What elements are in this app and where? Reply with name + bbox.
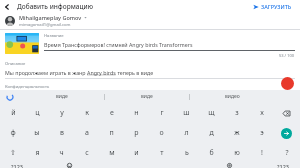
button[interactable]: ч — [49, 143, 74, 163]
button[interactable]: я — [25, 143, 49, 163]
staticText: м — [109, 148, 115, 158]
button[interactable]: ! — [249, 143, 274, 163]
button[interactable]: ж — [224, 123, 249, 143]
staticText: Конфиденциальность — [5, 84, 50, 90]
button[interactable]: Back — [0, 0, 13, 13]
button[interactable]: видео — [190, 90, 274, 103]
staticText: mimagomail1@gmail.com — [19, 22, 71, 28]
staticText: Мы продолжаем играть в жанр — [5, 69, 87, 76]
button[interactable]: Google — [0, 90, 20, 103]
button[interactable]: п — [99, 123, 124, 143]
button[interactable]: х — [249, 103, 274, 123]
staticText: и — [134, 148, 139, 158]
staticText: Добавить информацию — [17, 2, 94, 11]
staticText: т — [160, 148, 164, 158]
button[interactable]: Enter — [281, 128, 292, 139]
button[interactable]: у — [49, 103, 74, 123]
staticText: виде — [56, 93, 68, 100]
staticText: ЗАГРУЗИТЬ — [261, 3, 292, 10]
staticText: видео — [225, 93, 240, 100]
button[interactable]: а — [74, 123, 99, 143]
button[interactable]: б — [199, 143, 224, 163]
staticText: л — [184, 128, 189, 138]
staticText: а — [85, 128, 89, 138]
button[interactable]: Settings — [217, 163, 242, 168]
staticText: ⇧ — [10, 149, 16, 157]
staticText: я — [35, 148, 40, 158]
staticText: ф — [10, 128, 16, 138]
button[interactable]: Конфиденциальность — [5, 84, 295, 90]
staticText: р — [134, 128, 139, 138]
button[interactable]: ?123 — [1, 163, 32, 168]
staticText: Описание — [5, 61, 26, 67]
staticText: е — [110, 108, 114, 118]
staticText: виде — [141, 93, 153, 100]
staticText: ы — [34, 128, 40, 138]
button[interactable]: Backspace — [274, 103, 299, 123]
staticText: г — [160, 108, 164, 118]
staticText: ? — [285, 148, 289, 158]
staticText: ь — [185, 148, 189, 158]
staticText: Название — [44, 33, 64, 39]
button[interactable]: м — [99, 143, 124, 163]
staticText: Mihailgameplay Gomov — [19, 14, 82, 21]
button[interactable]: т — [149, 143, 174, 163]
button[interactable]: виде — [20, 90, 104, 103]
staticText: ю — [234, 148, 240, 158]
button[interactable]: о — [149, 123, 174, 143]
button[interactable]: з — [224, 103, 249, 123]
staticText: ч — [59, 148, 64, 158]
button[interactable]: с — [74, 143, 99, 163]
staticText: н — [134, 108, 139, 118]
button[interactable]: и — [124, 143, 149, 163]
button[interactable]: Record — [281, 77, 294, 90]
staticText: у — [60, 108, 64, 118]
button[interactable]: ь — [174, 143, 199, 163]
button[interactable]: щ — [199, 103, 224, 123]
button[interactable]: н — [124, 103, 149, 123]
staticText: п — [109, 128, 114, 138]
staticText: з — [235, 108, 239, 118]
staticText: ! — [261, 148, 263, 158]
staticText: ж — [234, 128, 240, 138]
button[interactable]: в — [49, 123, 74, 143]
staticText: в — [60, 128, 64, 138]
staticText: ?123 — [11, 163, 23, 168]
button[interactable]: й — [1, 103, 25, 123]
staticText: 53 / 100 — [279, 53, 295, 58]
staticText: ?123 — [277, 163, 289, 168]
button[interactable]: ы — [25, 123, 49, 143]
button[interactable]: ц — [25, 103, 49, 123]
button[interactable]: ?123 — [267, 163, 299, 168]
staticText: к — [85, 108, 89, 118]
button[interactable]: ш — [174, 103, 199, 123]
button[interactable]: ю — [224, 143, 249, 163]
button[interactable]: виде — [105, 90, 189, 103]
button[interactable]: э — [249, 123, 274, 143]
button[interactable]: е — [99, 103, 124, 123]
button[interactable] — [5, 33, 39, 54]
staticText: д — [209, 128, 214, 138]
staticText: с — [85, 148, 89, 158]
button[interactable]: г — [149, 103, 174, 123]
staticText: щ — [208, 108, 215, 118]
button[interactable]: ? — [274, 143, 299, 163]
staticText: э — [260, 128, 264, 138]
staticText: теперь в виде — [116, 69, 154, 76]
button[interactable]: ЗАГРУЗИТЬ — [251, 2, 294, 11]
staticText: б — [209, 148, 214, 158]
button[interactable]: Emoji — [57, 163, 82, 168]
button[interactable]: к — [74, 103, 99, 123]
button[interactable]: ф — [1, 123, 25, 143]
button[interactable]: д — [199, 123, 224, 143]
button[interactable]: л — [174, 123, 199, 143]
staticText: о — [159, 128, 164, 138]
button[interactable]: ⇧ — [1, 143, 25, 163]
button[interactable]: Mihailgameplay Gomov — [0, 13, 300, 29]
button[interactable]: р — [124, 123, 149, 143]
staticText: Время Трансформеров! стимкей Angry birds… — [44, 41, 193, 48]
